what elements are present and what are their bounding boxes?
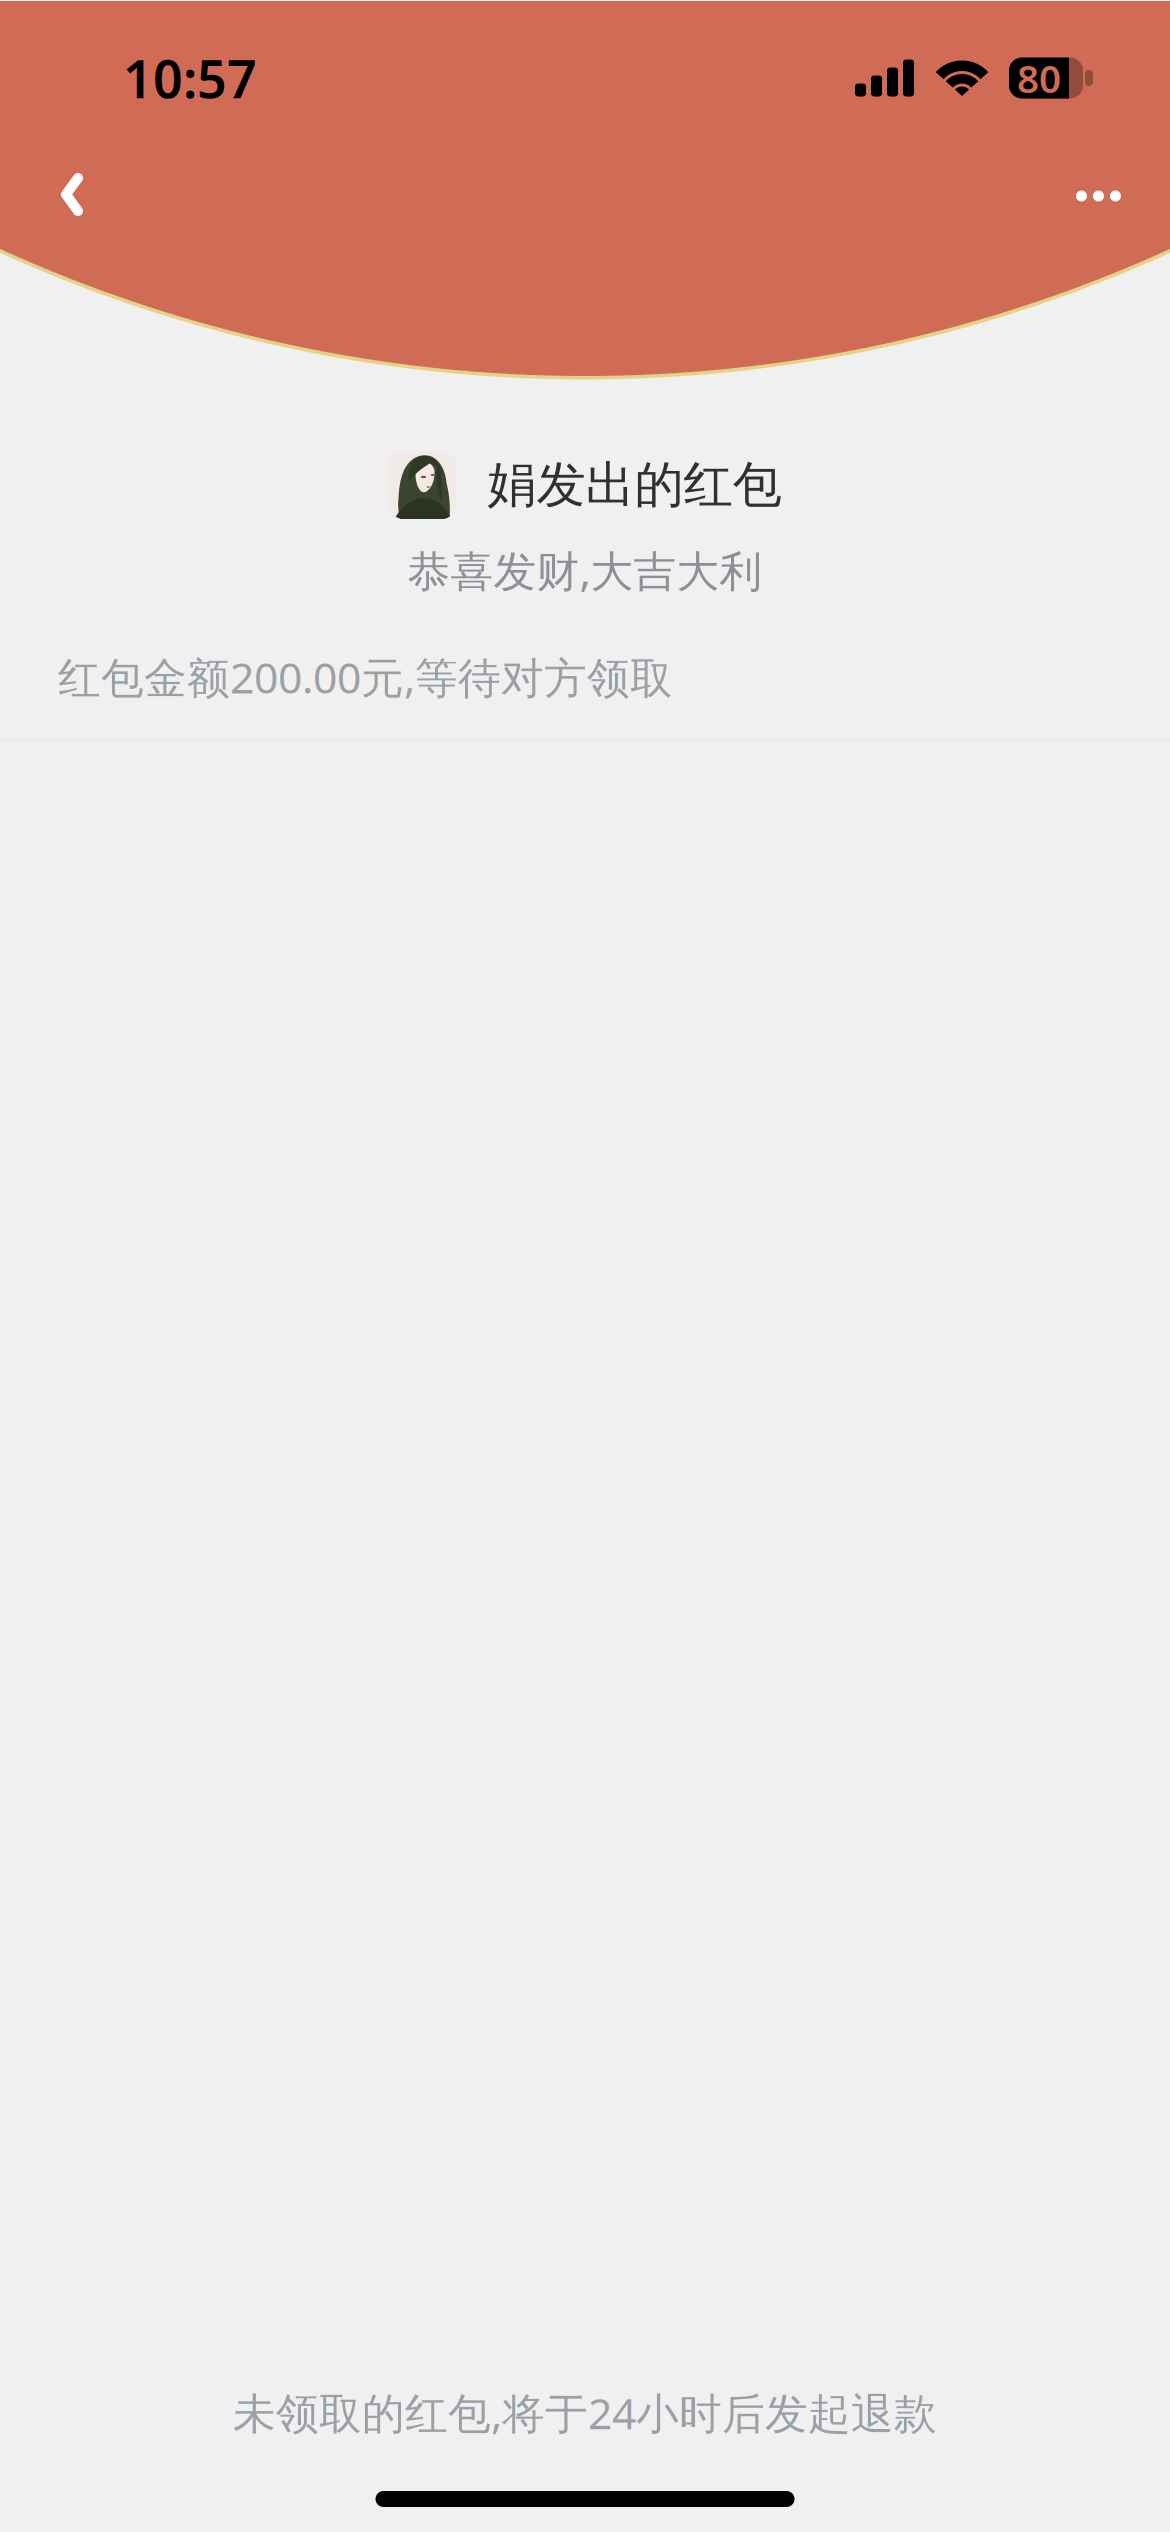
staticText: 娟发出的红包 xyxy=(487,455,781,515)
staticText: 红包金额200.00元,等待对方领取 xyxy=(58,649,673,705)
button[interactable]: Back xyxy=(0,156,128,246)
staticText: 80 xyxy=(1017,52,1061,104)
staticText: 未领取的红包,将于24小时后发起退款 xyxy=(233,2384,937,2441)
staticText: 恭喜发财,大吉大利 xyxy=(407,542,762,599)
staticText: 10:57 xyxy=(123,43,257,113)
button[interactable]: More xyxy=(1030,166,1170,235)
